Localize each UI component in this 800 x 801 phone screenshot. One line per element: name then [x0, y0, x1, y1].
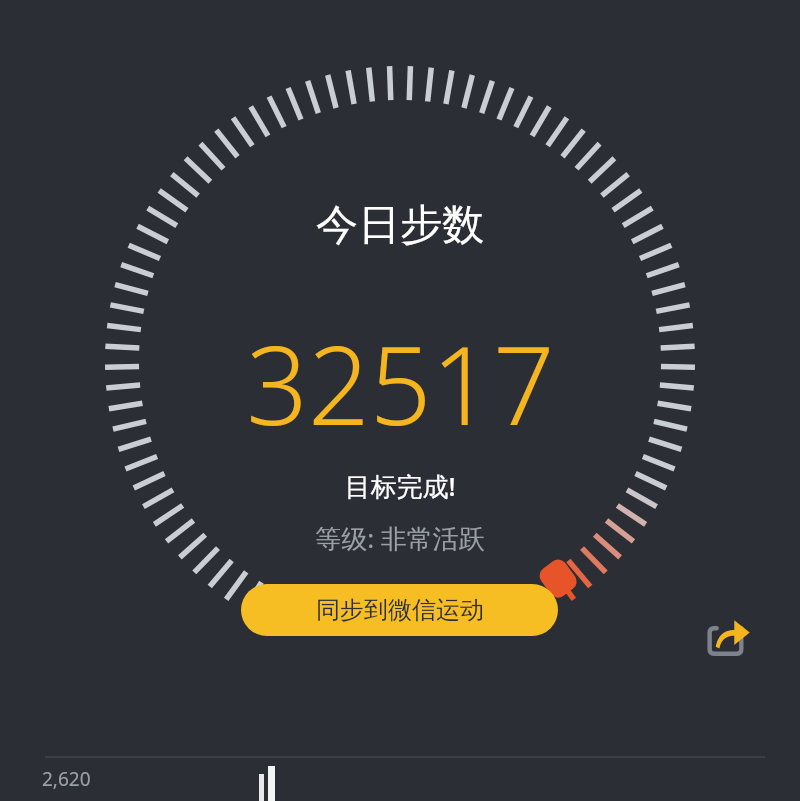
staticText: 目标完成!	[344, 468, 456, 504]
button[interactable]: 同步到微信运动	[241, 584, 558, 636]
staticText: 2,620	[42, 766, 91, 792]
staticText: 32517	[246, 310, 555, 457]
button[interactable]: Share	[700, 608, 758, 666]
staticText: 同步到微信运动	[316, 595, 484, 625]
staticText: 等级: 非常活跃	[315, 520, 485, 556]
staticText: 今日步数	[316, 199, 484, 252]
